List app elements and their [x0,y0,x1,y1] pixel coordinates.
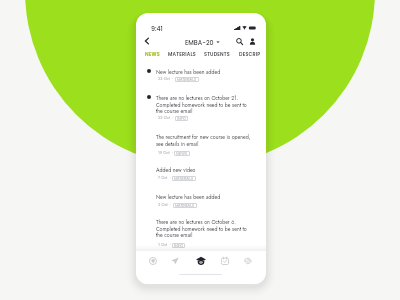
staticText: Completed homework need to be sent to [156,101,247,109]
staticText: The recruitment for new course is opened… [156,133,251,141]
staticText: INFO [177,116,186,121]
button[interactable]: STUDENTS [204,50,230,58]
button[interactable]: Courses [194,254,208,268]
staticText: DESCRIPTION [239,51,260,58]
staticText: NEWS [145,51,160,58]
button[interactable]: More [241,254,255,268]
staticText: 23 Oct • [158,76,174,82]
staticText: 1 Oct • [158,242,171,248]
button[interactable]: New lecture has been added [144,68,266,82]
button[interactable]: There are no lectures on October 6. [144,218,266,248]
staticText: NEWS [176,151,188,156]
button[interactable]: NEWS [145,50,160,58]
staticText: There are no lectures on October 21. [156,94,239,102]
staticText: MATERIALS [174,176,194,181]
staticText: Added new video [156,166,196,174]
button[interactable]: There are no lectures on October 21. [144,94,266,121]
button[interactable]: Explore [146,254,160,268]
staticText: 7 Oct • [158,175,171,181]
staticText: see details in email [156,140,199,148]
button[interactable]: DESCRIPTION [239,50,260,58]
staticText: MATERIALS [168,51,196,58]
button[interactable]: MATERIALS [168,50,196,58]
button[interactable]: EMBA-20 [185,37,220,47]
staticText: There are no lectures on October 6. [156,218,236,226]
button[interactable]: Added new video [144,166,266,181]
button[interactable]: Profile [246,35,258,47]
staticText: 19 Oct • [158,150,173,156]
button[interactable]: Calendar [218,254,232,268]
staticText: INFO [174,243,183,248]
staticText: 9:41 [151,24,163,33]
staticText: 22 Oct • [158,115,174,121]
button[interactable]: Search [233,35,245,47]
staticText: MATERIALS [175,203,195,208]
button[interactable]: Back [141,35,153,47]
button[interactable]: Messages [168,254,182,268]
button[interactable]: New lecture has been added [144,193,266,208]
staticText: EMBA-20 [185,38,214,47]
staticText: New lecture has been added [156,68,221,76]
staticText: MATERIALS [177,77,197,82]
staticText: STUDENTS [204,51,230,58]
staticText: the course email [156,231,193,239]
staticText: Completed homework need to be sent to [156,225,247,233]
staticText: 2 Oct • [158,202,172,208]
staticText: the course email [156,107,193,115]
button[interactable]: The recruitment for new course is opened… [144,133,266,156]
staticText: New lecture has been added [156,193,221,201]
